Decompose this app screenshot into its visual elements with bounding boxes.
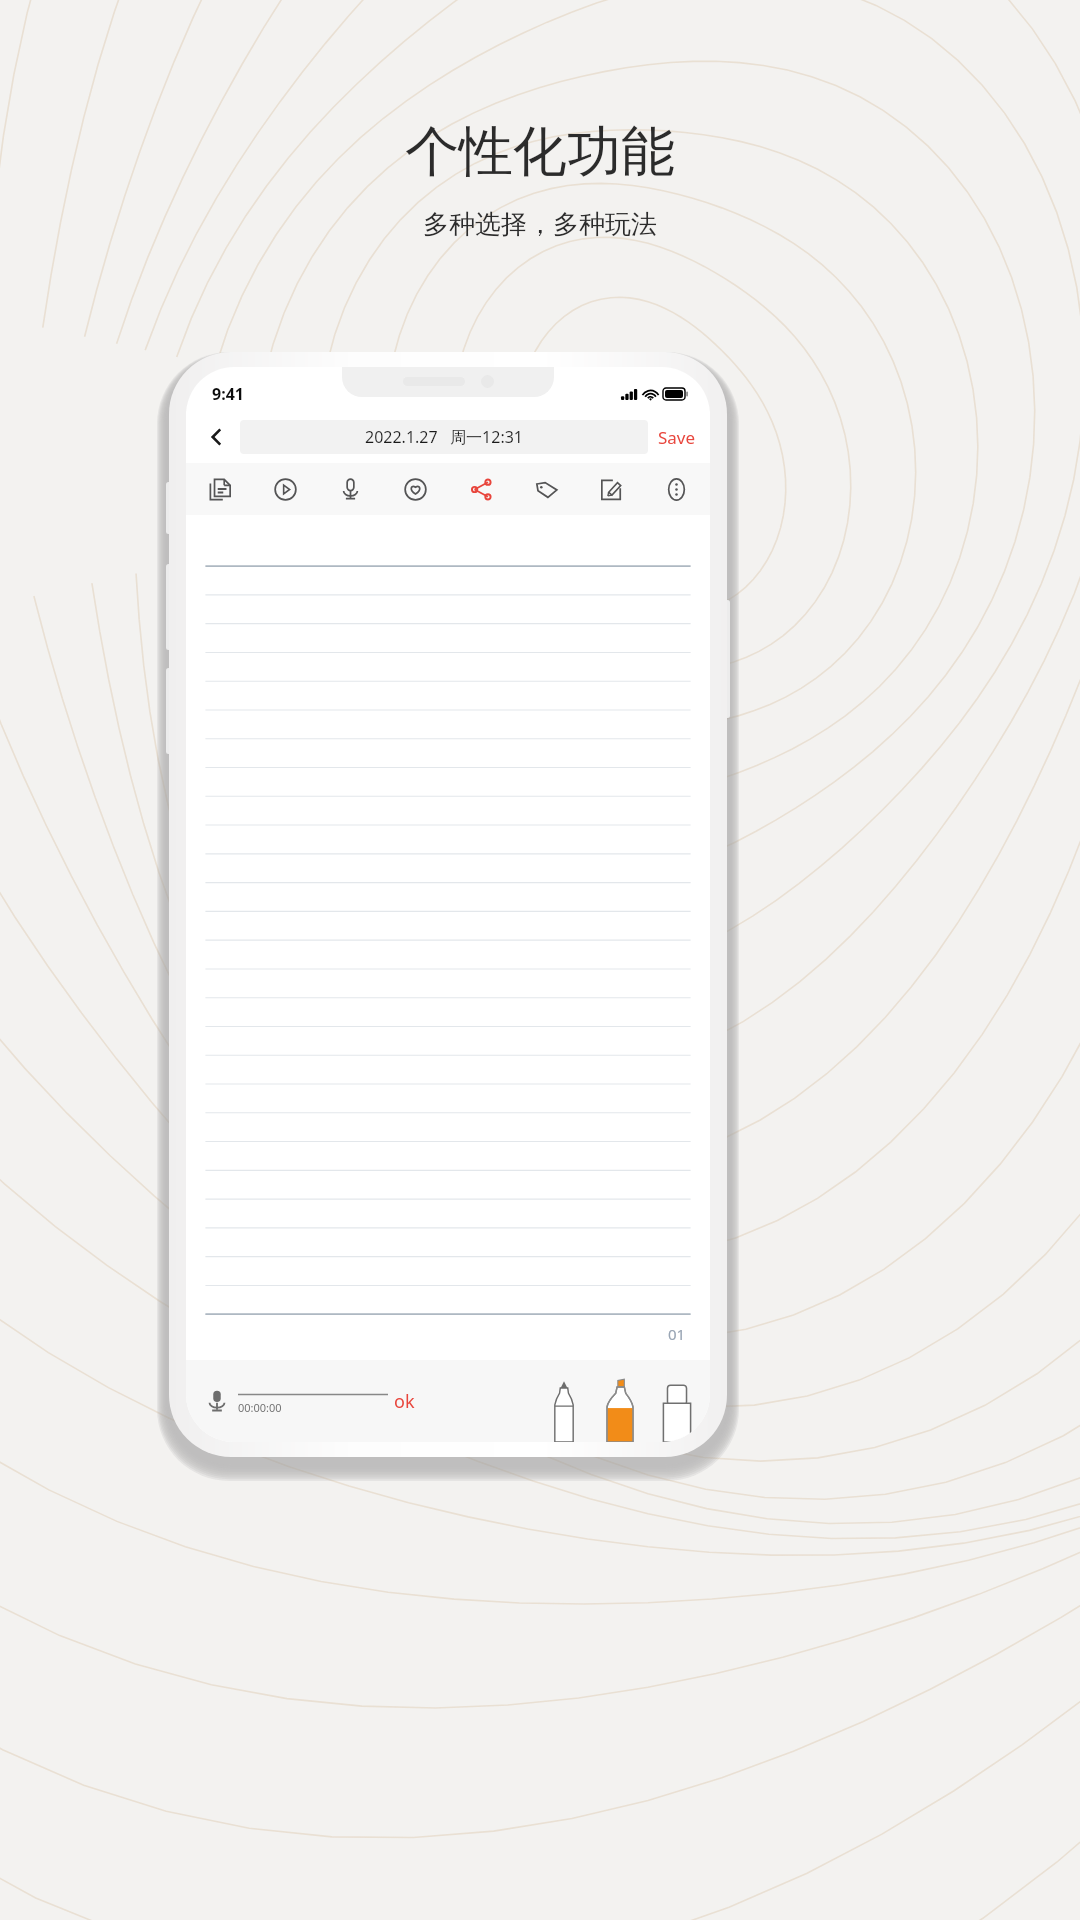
button[interactable]: Save	[658, 426, 696, 449]
button[interactable]: Play	[265, 467, 305, 511]
button[interactable]: 2022.1.27 周一12:31	[240, 420, 648, 454]
staticText: ok	[394, 1389, 415, 1414]
button[interactable]: Edit	[591, 467, 631, 511]
staticText: 个性化功能	[405, 118, 675, 186]
staticText: 2022.1.27 周一12:31	[365, 426, 524, 448]
staticText: 多种选择，多种玩法	[423, 208, 657, 241]
button[interactable]: Share	[461, 467, 501, 511]
button[interactable]: Favorite	[395, 467, 435, 511]
staticText: 9:41	[212, 383, 244, 405]
button[interactable]: Back	[200, 420, 234, 454]
button[interactable]: ok	[394, 1389, 415, 1414]
button[interactable]: Microphone	[200, 1384, 234, 1418]
button[interactable]: Document	[200, 467, 240, 511]
staticText: Save	[658, 426, 696, 449]
staticText: 01	[668, 1324, 686, 1344]
staticText: 00:00:00	[238, 1400, 282, 1415]
button[interactable]: Tag	[526, 467, 566, 511]
button[interactable]: More	[656, 467, 696, 511]
button[interactable]: Pen	[536, 1360, 592, 1442]
button[interactable]: Highlighter	[592, 1360, 648, 1442]
button[interactable]: Record	[330, 467, 370, 511]
button[interactable]: Eraser	[648, 1360, 706, 1442]
